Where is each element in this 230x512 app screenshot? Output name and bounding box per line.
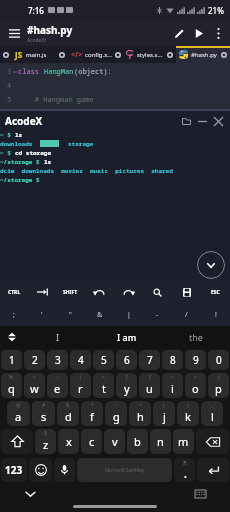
staticText: = xyxy=(102,374,105,381)
staticText: q xyxy=(8,381,15,396)
button[interactable]: Enter xyxy=(197,458,229,482)
staticText: ESC xyxy=(211,289,220,296)
button[interactable]: _ xyxy=(201,401,223,426)
button[interactable]: 8 xyxy=(162,350,183,370)
button[interactable]: Space xyxy=(77,458,172,482)
button[interactable]: $ xyxy=(35,429,56,454)
button[interactable]: Switch keyboard xyxy=(170,486,230,502)
button[interactable]: Backspace xyxy=(196,429,229,454)
button[interactable]: Scroll to bottom xyxy=(197,251,225,279)
button[interactable]: # xyxy=(32,401,55,426)
button[interactable]: > xyxy=(185,373,206,398)
button[interactable]: | xyxy=(114,303,143,326)
button[interactable]: styles.s… xyxy=(123,46,176,63)
button[interactable]: 3 xyxy=(47,350,68,370)
staticText: ' xyxy=(41,310,43,320)
button[interactable]: v xyxy=(104,429,125,454)
button[interactable]: Period xyxy=(174,458,195,482)
button[interactable]: - xyxy=(105,401,127,426)
button[interactable]: Shift xyxy=(1,429,33,454)
button[interactable]: ESC xyxy=(201,281,230,303)
staticText: the xyxy=(189,331,203,343)
button[interactable]: m xyxy=(173,429,194,454)
button[interactable]: Voice input xyxy=(54,458,75,482)
staticText: ?! xyxy=(183,460,187,467)
button[interactable]: 1 xyxy=(1,350,22,370)
button[interactable]: & xyxy=(85,303,114,326)
staticText: dcim downloads movies music pictures sha… xyxy=(0,167,173,175)
staticText: v xyxy=(112,434,118,449)
staticText: a xyxy=(15,409,22,424)
button[interactable]: % xyxy=(1,373,22,398)
button[interactable]: Symbols xyxy=(1,458,27,482)
button[interactable]: Undo xyxy=(85,281,114,303)
button[interactable]: ' xyxy=(28,303,56,326)
button[interactable]: I xyxy=(24,326,92,348)
button[interactable]: Open folder xyxy=(178,113,194,129)
staticText: #hash.py xyxy=(27,23,73,37)
button[interactable]: = xyxy=(93,373,114,398)
button[interactable]: " xyxy=(56,303,85,326)
button[interactable]: ; xyxy=(0,303,28,326)
staticText: s xyxy=(41,409,47,424)
button[interactable]: ] xyxy=(139,373,160,398)
staticText: $ xyxy=(44,430,47,437)
button[interactable]: 4 xyxy=(70,350,91,370)
staticText: # Hangman game xyxy=(18,95,94,105)
button[interactable]: b xyxy=(127,429,148,454)
staticText: CTRL xyxy=(8,289,21,296)
staticText: ls xyxy=(15,131,23,139)
button[interactable]: Edit xyxy=(169,23,189,43)
button[interactable]: SHIFT xyxy=(56,281,85,303)
button[interactable]: c xyxy=(81,429,102,454)
staticText: < xyxy=(171,374,174,381)
button[interactable]: Open navigation menu xyxy=(5,24,23,42)
button[interactable]: Search xyxy=(143,281,172,303)
button[interactable]: 6 xyxy=(116,350,137,370)
button[interactable]: n xyxy=(150,429,171,454)
button[interactable]: CTRL xyxy=(0,281,28,303)
staticText: r xyxy=(78,381,83,396)
button[interactable]: ^ xyxy=(24,373,45,398)
button[interactable]: Close terminal xyxy=(210,113,226,129)
button[interactable]: * xyxy=(81,401,103,426)
button[interactable]: the xyxy=(161,326,230,348)
button[interactable]: I am xyxy=(92,326,161,348)
button[interactable]: / xyxy=(172,303,201,326)
button[interactable]: 9 xyxy=(185,350,206,370)
staticText: m xyxy=(178,434,189,449)
button[interactable]: Expand toolbar xyxy=(0,326,24,348)
button[interactable]: Hide keyboard xyxy=(0,486,60,502)
button[interactable]: 0 xyxy=(208,350,229,370)
button[interactable]: + xyxy=(129,401,151,426)
button[interactable]: ~ xyxy=(47,373,68,398)
staticText: p xyxy=(215,381,222,396)
staticText: # xyxy=(42,402,46,409)
button[interactable]: Tab xyxy=(28,281,56,303)
button[interactable]: < xyxy=(162,373,183,398)
button[interactable]: #hash.py xyxy=(176,46,230,63)
button[interactable]: Redo xyxy=(114,281,143,303)
button[interactable]: x xyxy=(58,429,79,454)
button[interactable]: & xyxy=(57,401,79,426)
button[interactable]: Minimize xyxy=(194,113,210,129)
button[interactable]: ! xyxy=(201,303,230,326)
button[interactable]: | xyxy=(70,373,91,398)
button[interactable]: Emoji xyxy=(29,458,52,482)
staticText: @ xyxy=(16,402,21,409)
button[interactable]: ( xyxy=(153,401,175,426)
button[interactable]: 5 xyxy=(93,350,114,370)
button[interactable]: { xyxy=(208,373,229,398)
button[interactable]: Save xyxy=(172,281,201,303)
button[interactable]: 7 xyxy=(139,350,160,370)
button[interactable]: More options xyxy=(209,24,227,42)
button[interactable]: JS xyxy=(12,46,68,63)
button[interactable]: - xyxy=(143,303,172,326)
button[interactable]: ) xyxy=(177,401,199,426)
button[interactable]: </> xyxy=(68,46,123,63)
button[interactable]: 2 xyxy=(24,350,45,370)
button[interactable]: [ xyxy=(116,373,137,398)
button[interactable]: Run xyxy=(189,23,209,43)
staticText: u xyxy=(146,381,153,396)
button[interactable]: @ xyxy=(7,401,30,426)
